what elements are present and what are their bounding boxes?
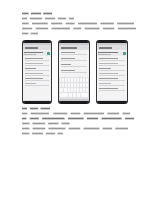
button[interactable]: Screenshot 1: form screen [22,40,52,104]
button[interactable]: Screenshot 2: keyboard input [58,40,90,104]
button[interactable]: Screenshot 3: filled form [96,40,128,104]
